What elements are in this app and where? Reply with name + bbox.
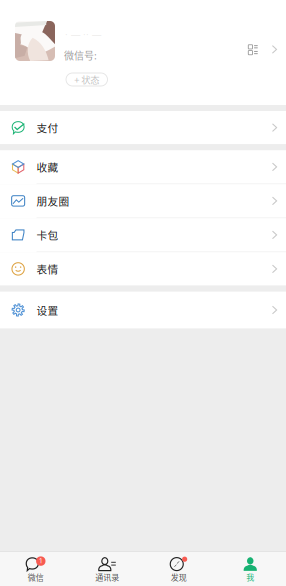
staticText: 1 xyxy=(39,557,42,565)
staticText: 设置 xyxy=(36,302,58,318)
staticText: 支付 xyxy=(36,120,58,135)
button[interactable]: 我 xyxy=(214,552,286,586)
button[interactable]: 发现 xyxy=(143,552,214,586)
staticText: + 状态 xyxy=(74,73,99,86)
staticText: 收藏 xyxy=(36,159,58,175)
button[interactable]: 1 xyxy=(0,552,71,586)
staticText: 表情 xyxy=(36,261,58,277)
staticText: 朋友圈 xyxy=(36,193,69,209)
staticText: · — ·· — xyxy=(65,29,101,40)
button[interactable]: · — ·· — xyxy=(0,0,286,105)
button[interactable]: 卡包 xyxy=(0,218,286,252)
button[interactable]: 通讯录 xyxy=(71,552,143,586)
button[interactable]: 表情 xyxy=(0,252,286,286)
staticText: 微信 xyxy=(28,571,44,583)
staticText: 微信号: xyxy=(64,48,97,62)
staticText: 卡包 xyxy=(36,227,58,243)
staticText: 我 xyxy=(246,571,254,583)
staticText: 通讯录 xyxy=(95,571,119,583)
staticText: 发现 xyxy=(171,571,187,583)
button[interactable]: 收藏 xyxy=(0,150,286,184)
button[interactable]: 设置 xyxy=(0,292,286,328)
button[interactable]: 朋友圈 xyxy=(0,184,286,218)
button[interactable]: 支付 xyxy=(0,111,286,144)
